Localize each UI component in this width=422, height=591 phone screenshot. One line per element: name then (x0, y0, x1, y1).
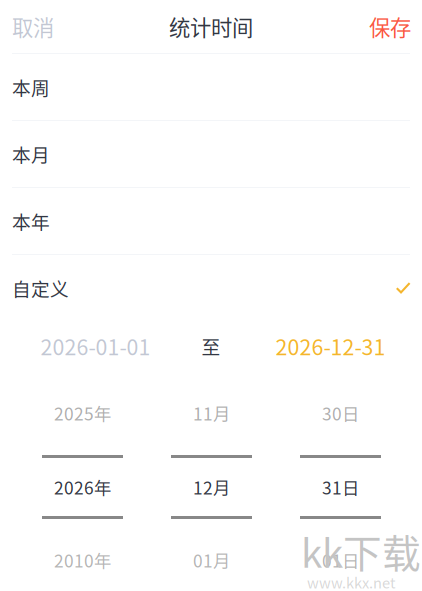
button[interactable]: 本年 (0, 188, 422, 254)
staticText: 至 (201, 332, 220, 359)
button[interactable]: 本月 (0, 121, 422, 187)
button[interactable]: 31日 (276, 476, 405, 498)
staticText: 2010年 (54, 547, 111, 573)
staticText: 11月 (193, 400, 230, 426)
button[interactable]: 本周 (0, 54, 422, 120)
staticText: 自定义 (12, 274, 69, 301)
staticText: 2026年 (54, 474, 111, 500)
staticText: 保存 (369, 11, 411, 42)
button[interactable]: 01月 (147, 549, 276, 571)
staticText: 2026-01-01 (40, 331, 150, 361)
button[interactable]: 2025年 (18, 402, 147, 424)
staticText: 本年 (12, 207, 50, 234)
button[interactable]: 01日 (276, 549, 405, 571)
staticText: 本周 (12, 73, 50, 100)
button[interactable]: 2026-12-31 (239, 321, 422, 367)
staticText: 31日 (322, 474, 359, 500)
staticText: 2026-12-31 (275, 331, 385, 361)
button[interactable]: 保存 (359, 0, 422, 53)
staticText: 2025年 (54, 400, 111, 426)
button[interactable]: 自定义 (0, 255, 422, 321)
button[interactable]: 2026年 (18, 476, 147, 498)
button[interactable]: 12月 (147, 476, 276, 498)
staticText: 统计时间 (169, 11, 253, 42)
staticText: www.kkx.net (307, 571, 396, 591)
staticText: 01日 (322, 547, 359, 573)
staticText: 本月 (12, 140, 50, 167)
staticText: 30日 (322, 400, 359, 426)
staticText: 01月 (193, 547, 230, 573)
button[interactable]: 30日 (276, 402, 405, 424)
staticText: 12月 (193, 474, 230, 500)
button[interactable]: 2010年 (18, 549, 147, 571)
button[interactable]: 取消 (0, 0, 64, 53)
staticText: 取消 (12, 11, 54, 42)
button[interactable]: 2026-01-01 (0, 321, 191, 367)
button[interactable]: 11月 (147, 402, 276, 424)
staticText: kk下载 (301, 523, 421, 579)
